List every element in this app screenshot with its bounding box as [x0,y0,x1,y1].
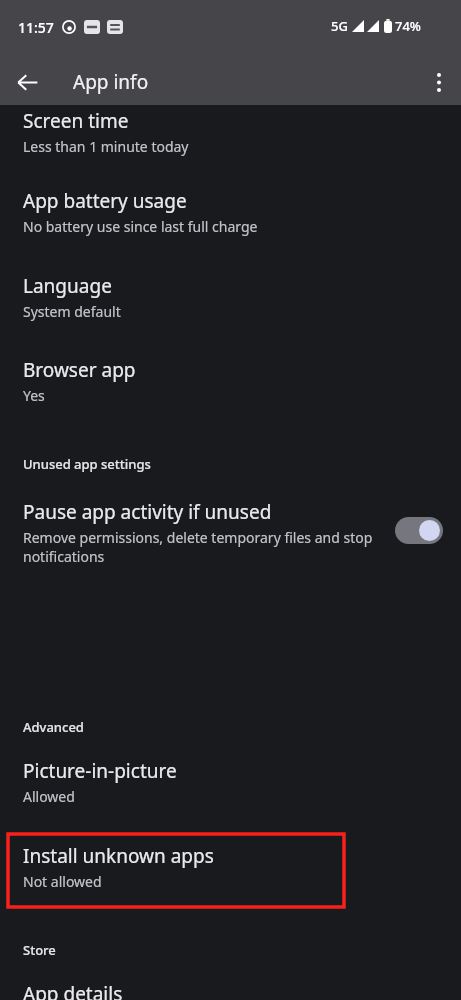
button[interactable]: Install unknown apps [0,843,461,891]
button[interactable]: Browser app [0,357,461,405]
staticText: App battery usage [23,188,187,214]
staticText: Browser app [23,357,136,383]
staticText: Less than 1 minute today [23,137,189,156]
button[interactable]: Pause app activity if unused toggle [395,517,443,544]
staticText: Install unknown apps [23,843,214,869]
staticText: App info [73,69,149,95]
staticText: Store [23,941,56,959]
staticText: 74% [395,17,421,35]
button[interactable]: Pause app activity if unused [0,499,461,566]
button[interactable]: Language [0,273,461,321]
staticText: Remove permissions, delete temporary fil… [23,528,385,566]
staticText: Allowed [23,787,75,806]
button[interactable]: Screen time [0,108,461,156]
button[interactable]: App battery usage [0,188,461,236]
staticText: Pause app activity if unused [23,499,272,525]
staticText: System default [23,302,121,321]
staticText: App details [23,981,123,1000]
staticText: 5G [331,17,348,35]
button[interactable]: App details [0,981,461,1000]
staticText: Screen time [23,108,129,134]
button[interactable]: Picture-in-picture [0,758,461,806]
button[interactable]: More options [418,61,460,103]
staticText: Yes [23,386,45,405]
staticText: Language [23,273,112,299]
staticText: Unused app settings [23,455,151,473]
staticText: Not allowed [23,872,102,891]
button[interactable]: Back [7,62,47,102]
staticText: 11:57 [18,18,54,37]
staticText: No battery use since last full charge [23,217,258,236]
staticText: Picture-in-picture [23,758,177,784]
staticText: Advanced [23,718,84,736]
